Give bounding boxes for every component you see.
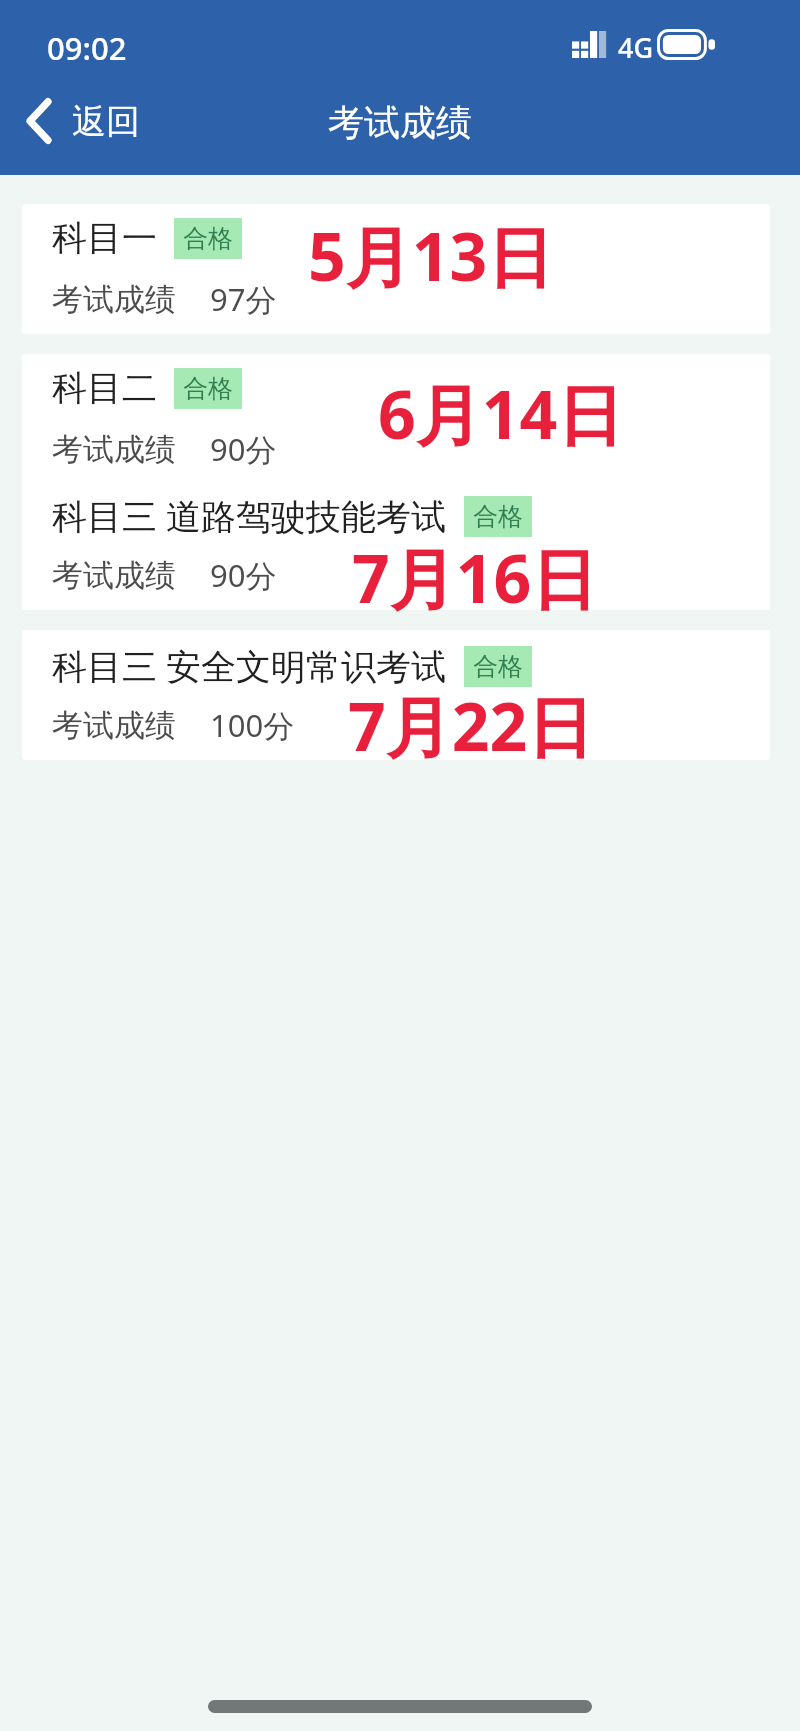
button[interactable]: 科目一 [22,204,770,334]
staticText: 合格 [183,223,233,254]
staticText: 考试成绩 [52,280,176,319]
staticText: 合格 [183,373,233,404]
staticText: 科目二 [52,366,157,410]
staticText: 90分 [210,428,277,470]
staticText: 考试成绩 [52,556,176,595]
staticText: 科目三 道路驾驶技能考试 [52,492,447,540]
staticText: 合格 [473,651,523,682]
button[interactable]: 科目二 [22,354,770,484]
staticText: 返回 [72,100,140,143]
staticText: 6月14日 [378,368,624,458]
staticText: 考试成绩 [52,430,176,469]
staticText: 7月22日 [348,680,594,770]
staticText: 科目三 安全文明常识考试 [52,642,447,690]
staticText: 考试成绩 [52,706,176,745]
staticText: 合格 [473,501,523,532]
staticText: 90分 [210,554,277,596]
staticText: 7月16日 [352,532,598,622]
staticText: 5月13日 [308,210,554,300]
staticText: 考试成绩 [0,100,800,145]
button[interactable]: 科目三 安全文明常识考试 [22,630,770,760]
staticText: 100分 [210,704,295,746]
button[interactable]: 返回 [8,85,160,157]
staticText: 4G [618,29,654,66]
staticText: 科目一 [52,216,157,260]
staticText: 97分 [210,278,277,320]
staticText: 09:02 [47,27,127,69]
button[interactable]: 科目三 道路驾驶技能考试 [22,480,770,610]
